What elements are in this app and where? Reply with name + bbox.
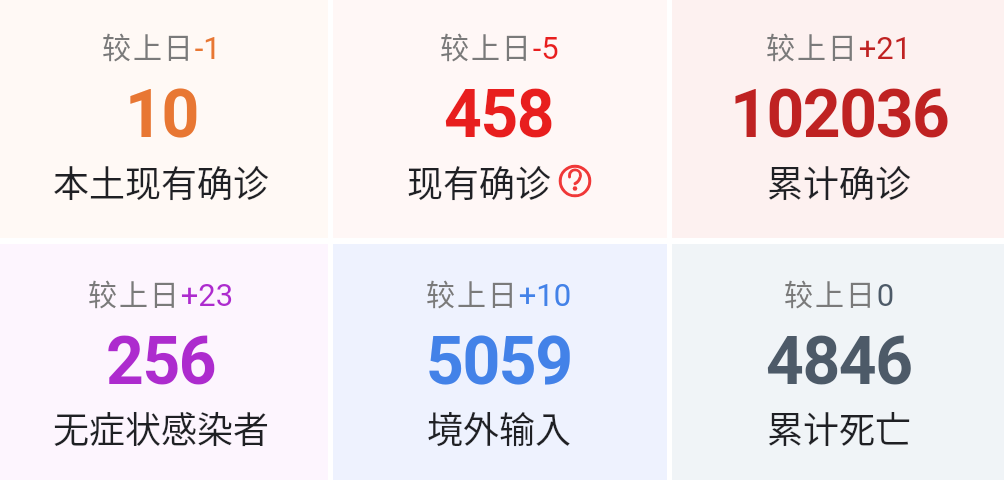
staticText: 10 — [125, 76, 198, 153]
staticText: 较上日0 — [784, 272, 895, 314]
staticText: 累计死亡 — [767, 401, 912, 453]
button[interactable]: 较上日+21 — [672, 0, 1004, 238]
staticText: 现有确诊 — [407, 155, 552, 207]
staticText: 较上日-1 — [102, 25, 221, 67]
button[interactable]: 较上日0 — [672, 244, 1004, 480]
staticText: 较上日+10 — [426, 272, 572, 314]
staticText: 102036 — [730, 76, 949, 153]
staticText: 458 — [444, 76, 554, 153]
staticText: 4846 — [766, 323, 912, 400]
staticText: 较上日-5 — [440, 25, 559, 67]
staticText: 较上日+23 — [88, 272, 234, 314]
staticText: 无症状感染者 — [53, 401, 270, 453]
staticText: 境外输入 — [427, 401, 572, 453]
button[interactable]: 较上日-5 — [333, 0, 667, 238]
staticText: 5059 — [426, 323, 572, 400]
staticText: 本土现有确诊 — [53, 155, 270, 207]
button[interactable]: 较上日-1 — [0, 0, 328, 238]
button[interactable]: What does 现有确诊 mean — [558, 164, 592, 198]
staticText: 256 — [106, 323, 216, 400]
button[interactable]: 较上日+23 — [0, 244, 328, 480]
staticText: 较上日+21 — [766, 25, 912, 67]
staticText: 累计确诊 — [767, 155, 912, 207]
button[interactable]: 较上日+10 — [333, 244, 667, 480]
